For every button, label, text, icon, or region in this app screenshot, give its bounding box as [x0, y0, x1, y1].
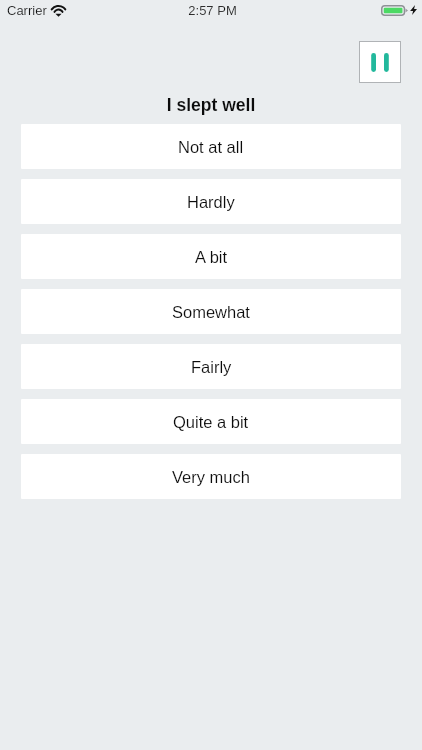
button[interactable]: Not at all [21, 124, 401, 169]
button[interactable]: Hardly [21, 179, 401, 224]
button[interactable]: Fairly [21, 344, 401, 389]
staticText: Fairly [191, 358, 232, 376]
staticText: Very much [172, 468, 250, 486]
staticText: Hardly [187, 193, 235, 211]
staticText: Somewhat [172, 303, 250, 321]
staticText: A bit [195, 248, 228, 266]
staticText: I slept well [0, 95, 422, 115]
button[interactable]: A bit [21, 234, 401, 279]
staticText: 2:57 PM [188, 3, 237, 18]
button[interactable]: Somewhat [21, 289, 401, 334]
staticText: Not at all [178, 138, 244, 156]
button[interactable]: Pause [359, 41, 401, 83]
staticText: Quite a bit [173, 413, 249, 431]
button[interactable]: Quite a bit [21, 399, 401, 444]
staticText: Carrier [7, 3, 47, 18]
button[interactable]: Very much [21, 454, 401, 499]
